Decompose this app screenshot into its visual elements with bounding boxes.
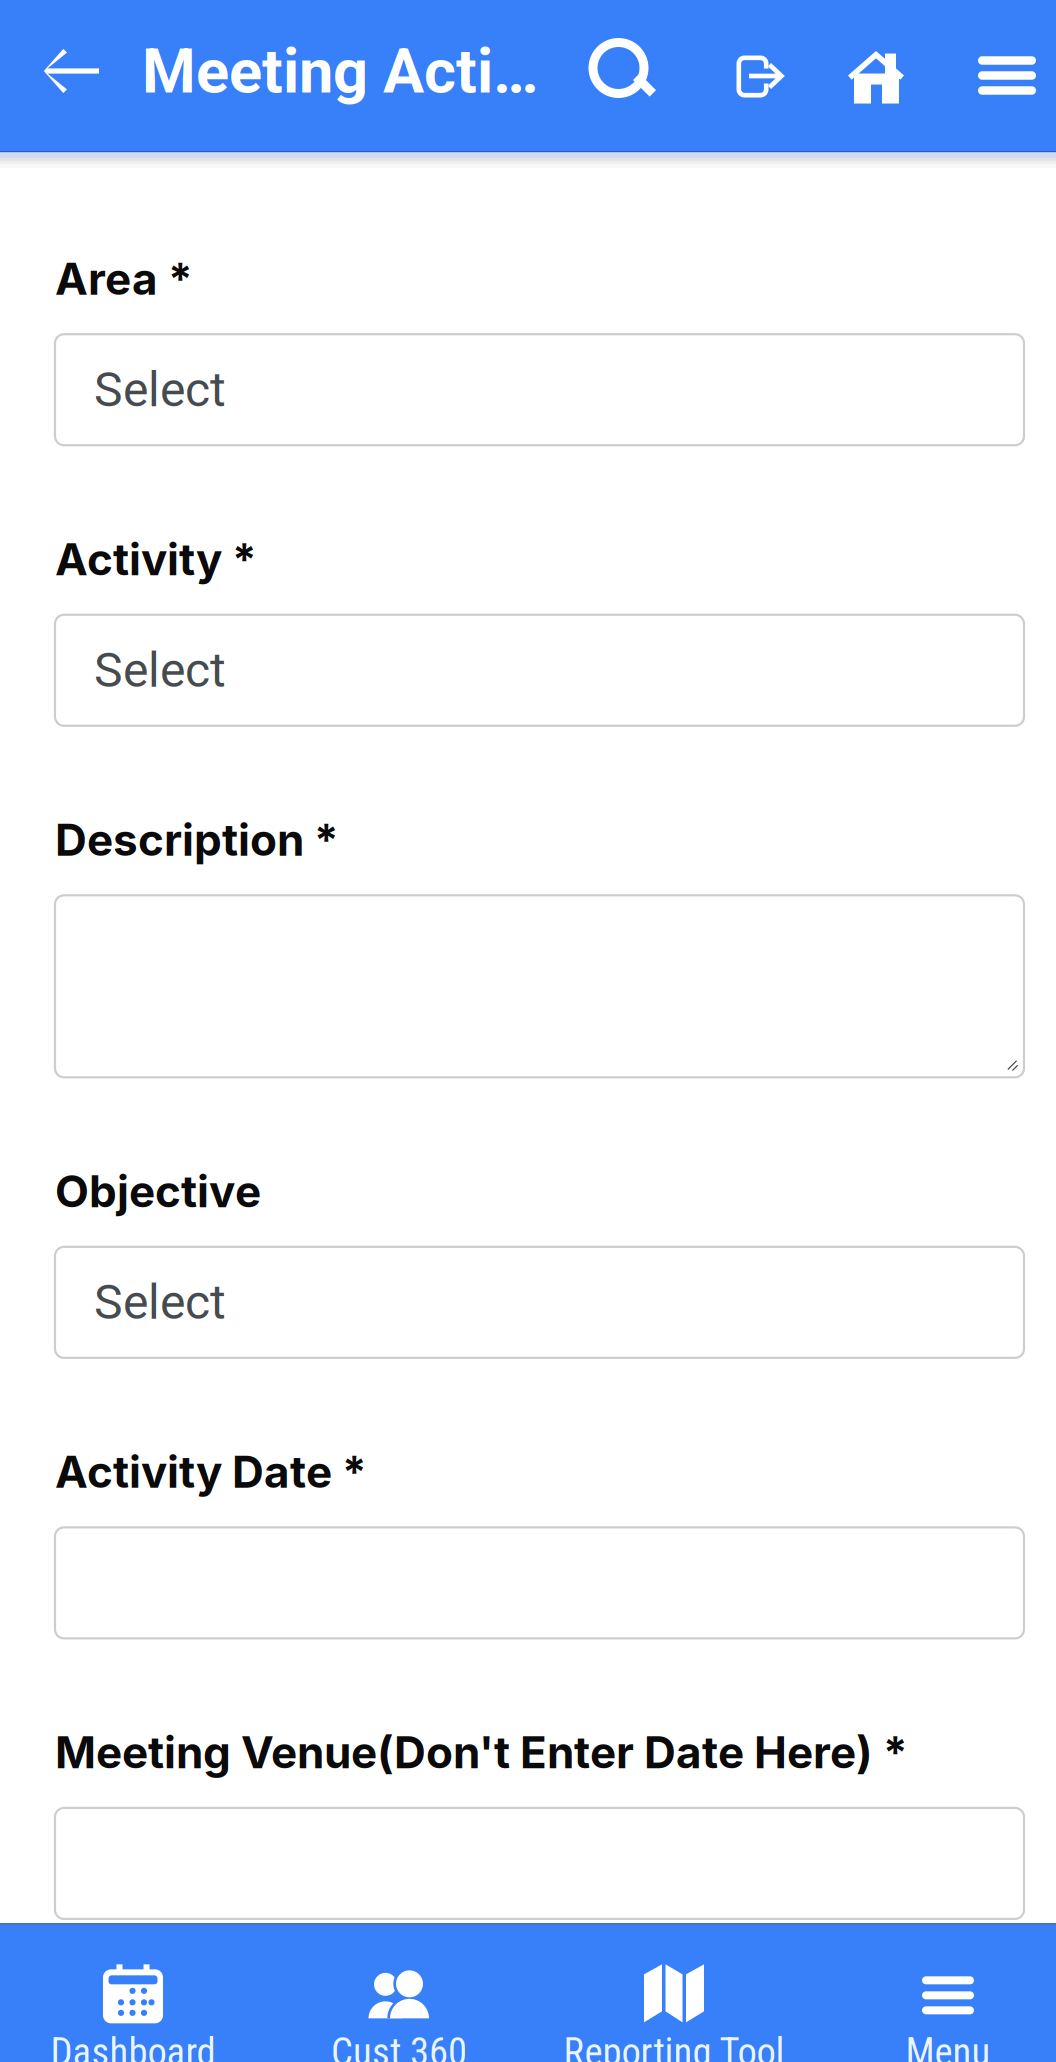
button[interactable]: Select — [55, 334, 1024, 445]
button[interactable]: Select — [55, 1247, 1024, 1358]
staticText: Description * — [55, 813, 339, 866]
staticText: Meeting Venue(Don't Enter Date Here) * — [55, 1726, 908, 1779]
staticText: Area * — [55, 252, 193, 305]
staticText: Activity * — [55, 532, 257, 586]
button[interactable] — [55, 1808, 1024, 1919]
button[interactable]: Cust 360 — [267, 1923, 531, 2062]
staticText: Reporting Tool — [563, 2029, 784, 2062]
button[interactable]: Menu — [967, 0, 1047, 151]
staticText: Select — [94, 642, 226, 698]
button[interactable]: Menu — [816, 1923, 1056, 2062]
button[interactable]: Back — [32, 0, 112, 147]
staticText: Objective — [55, 1165, 261, 1218]
staticText: Select — [94, 1274, 226, 1330]
button[interactable]: Select — [55, 615, 1024, 726]
staticText: Activity Date * — [55, 1445, 367, 1498]
button[interactable]: Dashboard — [1, 1923, 265, 2062]
staticText: Meeting Acti… — [142, 36, 538, 107]
staticText: Select — [94, 362, 226, 418]
button[interactable] — [55, 1527, 1024, 1638]
button[interactable]: Search — [585, 0, 665, 148]
button[interactable]: Reporting Tool — [542, 1923, 806, 2062]
button[interactable]: Log out — [721, 1, 801, 152]
staticText: Cust 360 — [331, 2029, 467, 2062]
button[interactable]: Home — [836, 1, 916, 152]
staticText: Menu — [905, 2029, 990, 2062]
button[interactable] — [55, 895, 1024, 1077]
staticText: Dashboard — [50, 2029, 215, 2062]
